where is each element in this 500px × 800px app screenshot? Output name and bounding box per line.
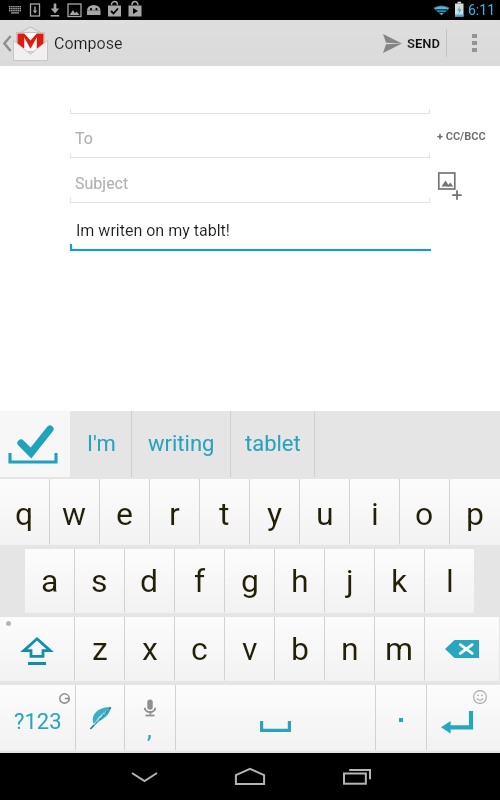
button[interactable]: z: [75, 615, 124, 683]
button[interactable]: Accept suggestion: [0, 411, 70, 477]
button[interactable]: Attach image: [438, 172, 464, 204]
staticText: z: [92, 630, 108, 668]
button[interactable]: Back: [0, 20, 123, 66]
button[interactable]: k: [375, 547, 424, 615]
staticText: Compose: [54, 34, 123, 53]
button[interactable]: Enter: [427, 683, 500, 753]
button[interactable]: f: [175, 547, 224, 615]
staticText: n: [341, 630, 359, 668]
button[interactable]: e: [100, 477, 149, 547]
button[interactable]: y: [250, 477, 299, 547]
button[interactable]: t: [200, 477, 249, 547]
staticText: 6:11: [468, 2, 495, 18]
button[interactable]: p: [450, 477, 500, 547]
button[interactable]: l: [425, 547, 474, 615]
staticText: l: [446, 562, 454, 600]
staticText: d: [140, 562, 159, 600]
button[interactable]: Home: [214, 753, 286, 800]
button[interactable]: m: [375, 615, 424, 683]
staticText: i: [371, 495, 379, 533]
button[interactable]: x: [125, 615, 174, 683]
staticText: e: [116, 495, 133, 533]
staticText: ?123: [14, 709, 62, 735]
staticText: x: [142, 630, 158, 668]
staticText: SEND: [407, 36, 440, 51]
button[interactable]: g: [225, 547, 274, 615]
button[interactable]: b: [275, 615, 324, 683]
staticText: Subject: [75, 174, 129, 193]
staticText: m: [385, 630, 414, 668]
staticText: b: [291, 630, 309, 668]
button[interactable]: h: [275, 547, 324, 615]
button[interactable]: [376, 683, 426, 753]
button[interactable]: n: [325, 615, 374, 683]
staticText: Im writen on my tablt!: [76, 221, 230, 240]
button[interactable]: w: [50, 477, 99, 547]
staticText: p: [466, 495, 484, 533]
staticText: s: [91, 562, 108, 600]
staticText: y: [267, 495, 283, 533]
staticText: f: [194, 562, 206, 600]
staticText: g: [241, 562, 259, 600]
button[interactable]: writing: [132, 411, 231, 477]
staticText: w: [62, 495, 87, 533]
button[interactable]: SEND: [374, 20, 446, 66]
staticText: I'm: [87, 431, 116, 457]
staticText: tablet: [245, 431, 301, 457]
button[interactable]: j: [325, 547, 374, 615]
button[interactable]: v: [225, 615, 274, 683]
staticText: q: [15, 495, 34, 533]
staticText: c: [191, 630, 208, 668]
button[interactable]: s: [75, 547, 124, 615]
button[interactable]: tablet: [231, 411, 315, 477]
other: Back: [3, 35, 12, 52]
button[interactable]: Voice input: [125, 683, 175, 753]
button[interactable]: d: [125, 547, 174, 615]
staticText: v: [242, 630, 258, 668]
button[interactable]: i: [350, 477, 399, 547]
button[interactable]: c: [175, 615, 224, 683]
button[interactable]: u: [300, 477, 349, 547]
button[interactable]: q: [0, 477, 49, 547]
staticText: writing: [148, 431, 215, 457]
staticText: a: [41, 562, 59, 600]
staticText: o: [415, 495, 434, 533]
button[interactable]: o: [400, 477, 449, 547]
button[interactable]: I'm: [70, 411, 132, 477]
staticText: u: [316, 495, 334, 533]
button[interactable]: + CC/BCC: [437, 130, 486, 143]
staticText: j: [346, 562, 354, 600]
staticText: ,: [147, 716, 152, 744]
button[interactable]: Shift: [0, 615, 74, 683]
button[interactable]: Handwriting: [76, 683, 124, 753]
staticText: To: [75, 129, 93, 148]
button[interactable]: ?123: [0, 683, 75, 753]
staticText: k: [391, 562, 408, 600]
button[interactable]: Space: [176, 683, 375, 753]
button[interactable]: Backspace: [425, 615, 499, 683]
staticText: h: [291, 562, 309, 600]
button[interactable]: Recents: [321, 753, 393, 800]
button[interactable]: More options: [448, 20, 500, 66]
button[interactable]: r: [150, 477, 199, 547]
button[interactable]: Hide keyboard: [108, 753, 180, 800]
button[interactable]: a: [25, 547, 74, 615]
staticText: r: [169, 495, 180, 533]
staticText: t: [219, 495, 230, 533]
